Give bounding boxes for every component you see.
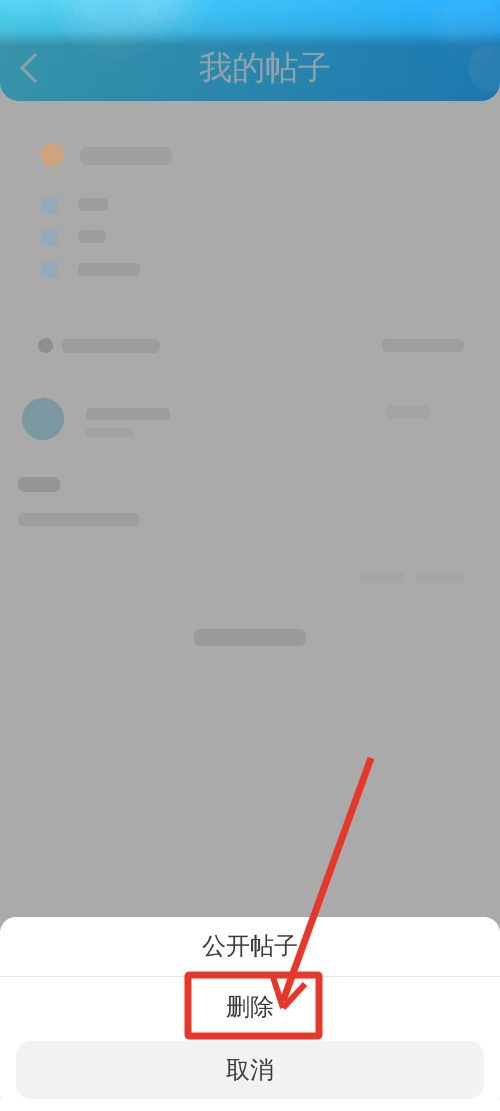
button[interactable]: Back bbox=[0, 35, 62, 101]
staticText: 公开帖子 bbox=[202, 931, 298, 961]
button[interactable]: 删除 bbox=[0, 977, 500, 1037]
button[interactable]: 公开帖子 bbox=[0, 916, 500, 976]
staticText: 取消 bbox=[226, 1055, 274, 1085]
staticText: 删除 bbox=[226, 992, 274, 1022]
button[interactable]: Profile bbox=[468, 35, 500, 101]
staticText: 我的帖子 bbox=[199, 47, 331, 88]
button[interactable]: 取消 bbox=[0, 1041, 500, 1099]
